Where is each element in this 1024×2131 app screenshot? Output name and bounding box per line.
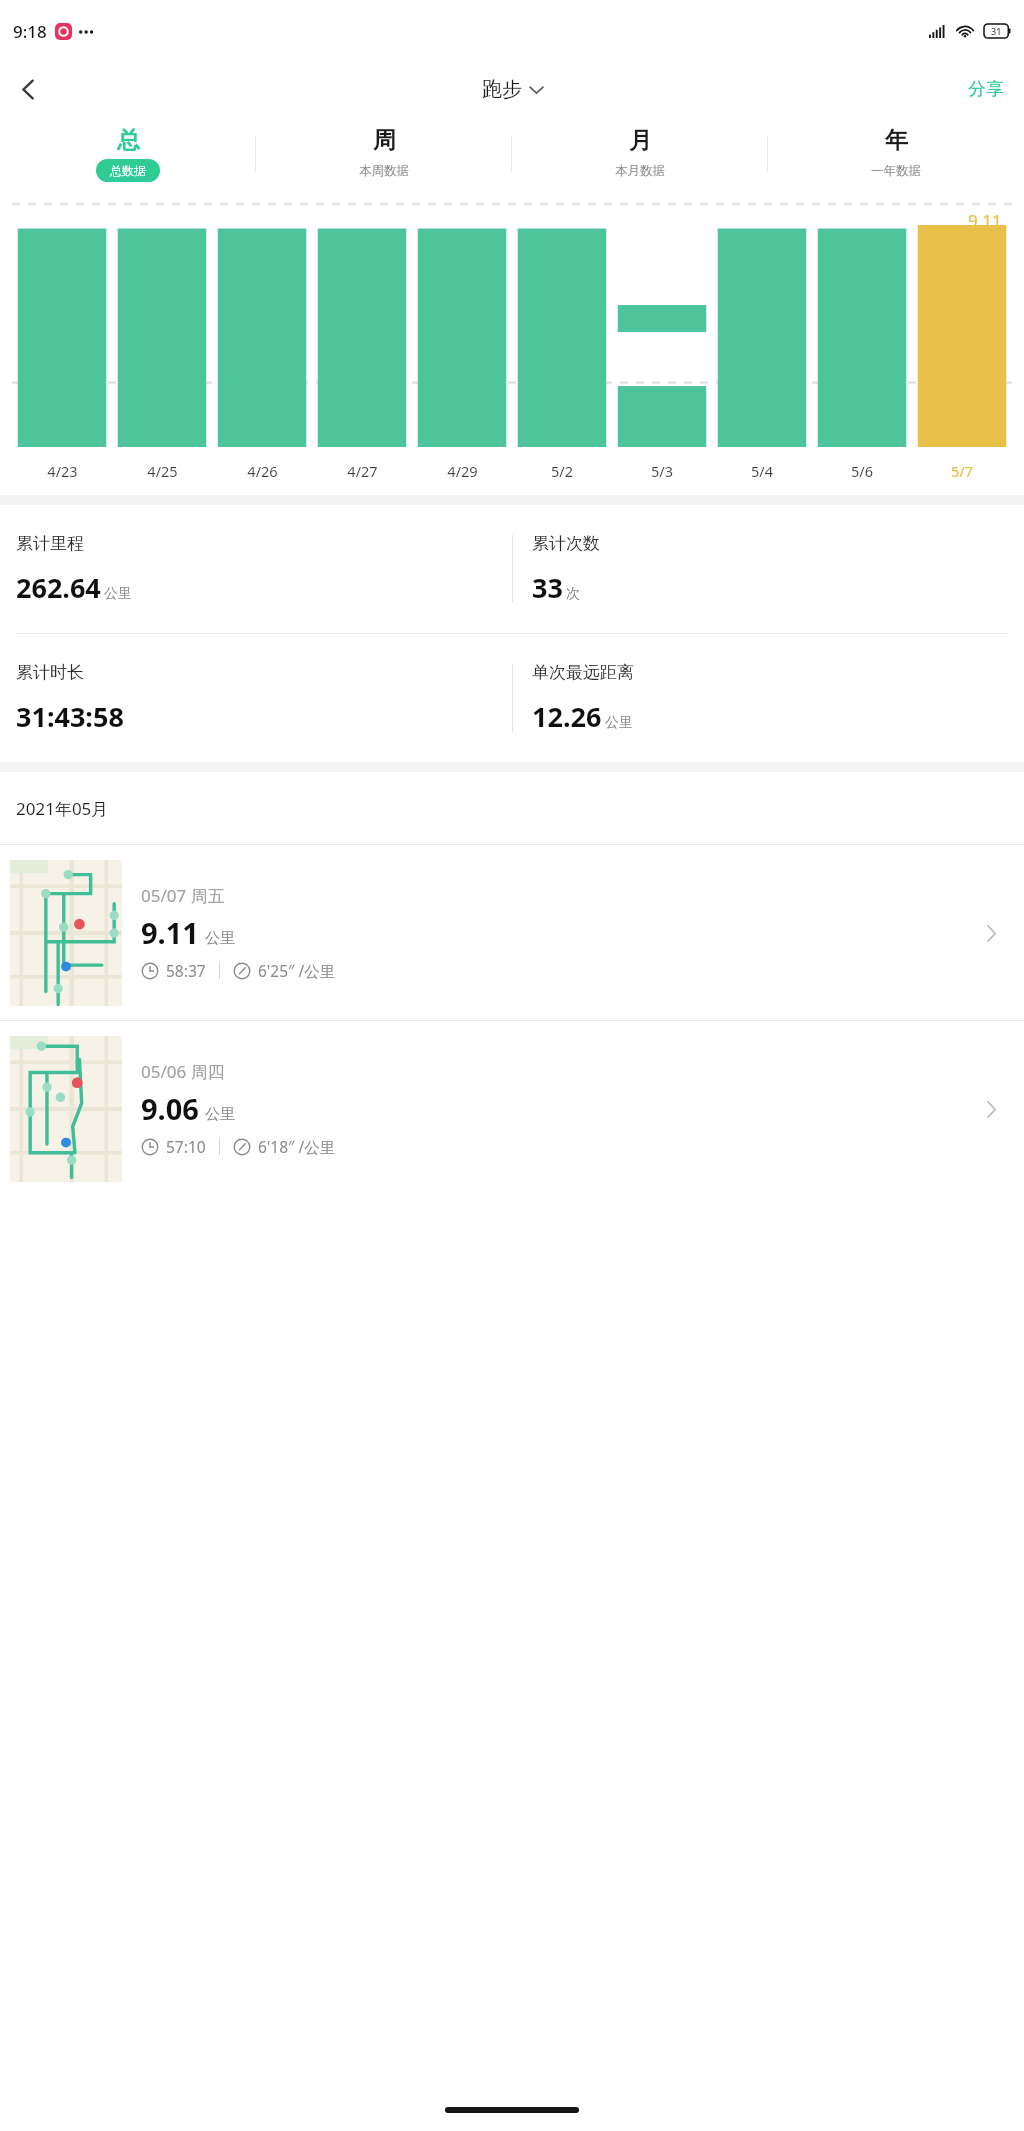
staticText: 4/23 [47,461,78,481]
staticText: 本周数据 [359,163,409,179]
staticText: 05/06 周四 [141,1060,225,1083]
staticText: 33 [532,569,563,606]
staticText: 4/27 [347,461,378,481]
button[interactable]: 跑步 [482,77,543,102]
staticText: 5/2 [551,461,573,481]
staticText: 58:37 [166,960,206,981]
staticText: 一年数据 [871,163,921,179]
staticText: 2021年05月 [16,797,109,820]
button[interactable]: 05/07 周五 [0,845,1024,1020]
staticText: 累计里程 [16,533,84,554]
staticText: 次 [566,585,580,603]
staticText: 4/29 [447,461,478,481]
staticText: 5/7 [951,461,973,481]
staticText: 年 [885,126,908,155]
button[interactable]: 月 [512,116,768,192]
staticText: 累计次数 [532,533,600,554]
button[interactable]: 05/06 周四 [0,1021,1024,1196]
staticText: 05/07 周五 [141,884,225,907]
other: Open detail [976,1094,1006,1124]
staticText: 5/6 [851,461,873,481]
staticText: 累计时长 [16,662,84,683]
staticText: 4/25 [147,461,178,481]
staticText: 12.26 [532,698,602,735]
staticText: 31:43:58 [16,698,124,735]
staticText: 公里 [205,1105,235,1124]
button[interactable]: 分享 [964,72,1008,107]
staticText: 6'25″ /公里 [258,960,336,981]
staticText: 6'18″ /公里 [258,1136,336,1157]
staticText: 总数据 [110,163,146,178]
staticText: 57:10 [166,1136,206,1157]
staticText: 单次最远距离 [532,662,634,683]
staticText: 总 [117,126,140,155]
staticText: 周 [373,126,396,155]
staticText: 4/26 [247,461,278,481]
button[interactable]: 年 [768,116,1024,192]
button[interactable]: 总 [0,116,256,192]
staticText: 跑步 [482,77,522,102]
staticText: 9.11 [141,913,199,952]
staticText: 分享 [968,78,1004,101]
button[interactable]: Back [5,66,51,112]
other: Open detail [976,918,1006,948]
staticText: 5/3 [651,461,673,481]
staticText: 31 [991,25,1002,37]
staticText: 公里 [205,929,235,948]
staticText: 9.06 [141,1089,199,1128]
staticText: 262.64 [16,569,101,606]
staticText: 月 [629,126,652,155]
staticText: 公里 [605,714,633,732]
staticText: 5/4 [751,461,773,481]
staticText: 9:18 [13,20,47,43]
button[interactable]: 周 [256,116,512,192]
staticText: 公里 [104,585,132,603]
staticText: 本月数据 [615,163,665,179]
staticText: 9.11 [968,209,1002,232]
